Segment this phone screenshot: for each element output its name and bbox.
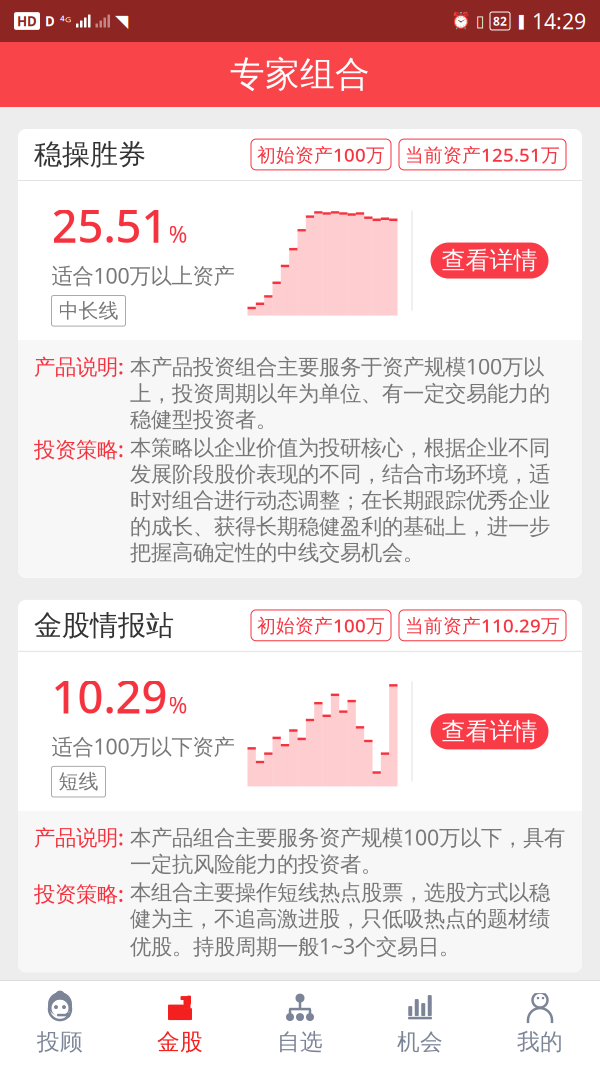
staticText: 82	[493, 13, 507, 29]
button[interactable]: 我的	[480, 981, 600, 1067]
staticText: ⁴ᴳ	[60, 12, 71, 30]
button[interactable]: 查看详情	[430, 242, 548, 278]
staticText: 稳操胜券	[34, 137, 146, 172]
staticText: 当前资产110.29万	[405, 613, 560, 638]
staticText: 机会	[397, 1028, 443, 1056]
button[interactable]: 机会	[360, 981, 480, 1067]
staticText: 我的	[517, 1028, 563, 1056]
staticText: HD	[17, 12, 37, 30]
staticText: 10.29	[51, 666, 167, 726]
staticText: %	[168, 690, 187, 720]
staticText: ⏰	[451, 12, 471, 30]
staticText: 本策略以企业价值为投研核心，根据企业不同发展阶段股价表现的不同，结合市场环境，适…	[130, 435, 550, 566]
staticText: 适合100万以上资产	[51, 261, 234, 289]
staticText: 中长线	[58, 298, 118, 323]
staticText: 金股情报站	[34, 608, 174, 643]
staticText: 查看详情	[441, 246, 537, 275]
staticText: 自选	[277, 1028, 323, 1056]
staticText: 投资策略:	[34, 435, 130, 463]
staticText: 14:29	[532, 7, 586, 35]
staticText: 当前资产109.16万	[405, 1007, 560, 1032]
button[interactable]: 金股	[120, 981, 240, 1067]
staticText: %	[168, 219, 187, 249]
staticText: 投顾	[37, 1028, 83, 1056]
staticText: 初始资产100万	[257, 142, 385, 167]
staticText: 专家组合	[230, 53, 370, 96]
staticText: 当前资产125.51万	[405, 142, 560, 167]
staticText: 初始资产100万	[257, 613, 385, 638]
staticText: 初始资产100万	[257, 1007, 385, 1032]
button[interactable]: 投顾	[0, 981, 120, 1067]
staticText: 25.51	[51, 195, 167, 255]
staticText: ▯	[476, 12, 485, 30]
staticText: D	[45, 12, 55, 30]
staticText: 机构操盘	[34, 1002, 146, 1037]
button[interactable]: 自选	[240, 981, 360, 1067]
staticText: 投资策略:	[34, 879, 130, 908]
staticText: 本组合主要操作短线热点股票，选股方式以稳健为主，不追高激进股，只低吸热点的题材绩…	[130, 879, 550, 960]
staticText: 短线	[58, 769, 98, 794]
staticText: 本产品组合主要服务资产规模100万以下，具有一定抗风险能力的投资者。	[130, 823, 565, 877]
staticText: 适合100万以下资产	[51, 732, 234, 760]
staticText: 本产品投资组合主要服务于资产规模100万以上，投资周期以年为单位、有一定交易能力…	[130, 352, 550, 433]
staticText: 产品说明:	[34, 352, 130, 380]
staticText: ◥	[115, 11, 128, 31]
staticText: ❚	[515, 13, 527, 29]
button[interactable]: 查看详情	[430, 713, 548, 749]
staticText: 金股	[157, 1028, 203, 1056]
staticText: 查看详情	[441, 717, 537, 746]
staticText: 产品说明:	[34, 823, 130, 851]
